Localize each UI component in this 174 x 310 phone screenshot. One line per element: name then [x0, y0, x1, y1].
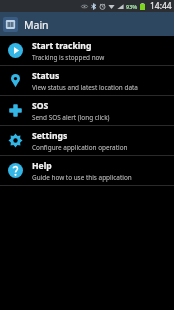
staticText: Start tracking	[32, 40, 92, 52]
staticText: Tracking is stopped now	[32, 53, 105, 62]
button[interactable]: Status	[0, 66, 174, 95]
staticText: Configure application operation	[32, 143, 128, 152]
staticText: 14:44	[150, 0, 172, 12]
other: Help	[8, 163, 23, 178]
staticText: View status and latest location data	[32, 83, 138, 92]
button[interactable]: Help	[0, 156, 174, 185]
button[interactable]: Start tracking	[0, 36, 174, 65]
button[interactable]: SOS	[0, 96, 174, 125]
staticText: 93%	[126, 3, 138, 10]
other: Status	[8, 73, 23, 88]
staticText: Status	[32, 70, 60, 82]
button[interactable]: Settings	[0, 126, 174, 155]
other: Settings	[8, 133, 23, 148]
staticText: Send SOS alert (long click)	[32, 113, 110, 122]
staticText: Guide how to use this application	[32, 173, 132, 182]
staticText: Help	[32, 160, 52, 172]
staticText: SOS	[32, 100, 49, 112]
button[interactable]: Main	[0, 12, 174, 36]
staticText: Main	[24, 18, 49, 32]
other: Start tracking	[8, 43, 23, 58]
other: SOS	[8, 103, 23, 118]
staticText: Settings	[32, 130, 68, 142]
